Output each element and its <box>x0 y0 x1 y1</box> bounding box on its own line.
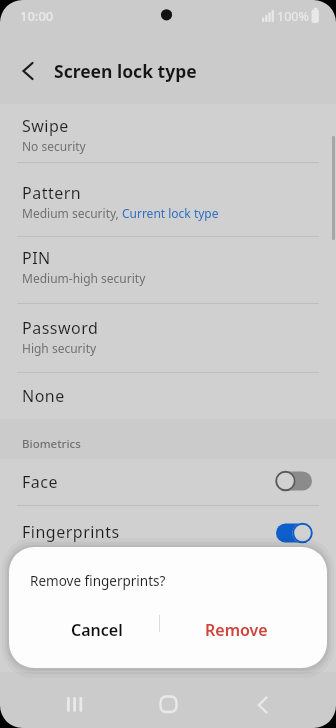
button[interactable] <box>242 684 282 724</box>
staticText: Face <box>22 471 58 493</box>
button[interactable] <box>0 459 336 506</box>
button[interactable] <box>148 684 188 724</box>
staticText: Screen lock type <box>54 59 197 83</box>
button[interactable] <box>0 104 336 162</box>
staticText: Biometrics <box>22 436 81 452</box>
staticText: Cancel <box>71 619 123 641</box>
staticText: 10:00 <box>20 7 54 25</box>
staticText: PIN <box>22 247 51 269</box>
button[interactable]: Cancel <box>47 605 147 655</box>
button[interactable] <box>0 237 336 303</box>
staticText: 100% <box>277 8 309 25</box>
button[interactable]: Remove <box>186 605 286 655</box>
staticText: Remove fingerprints? <box>30 572 166 590</box>
staticText: None <box>22 385 65 407</box>
staticText: Password <box>22 317 99 339</box>
button[interactable] <box>0 304 336 372</box>
staticText: Pattern <box>22 182 82 204</box>
button[interactable] <box>55 684 95 724</box>
staticText: No security <box>22 138 86 154</box>
staticText: Medium-high security <box>22 270 146 286</box>
button[interactable] <box>0 506 336 547</box>
staticText: High security <box>22 340 97 356</box>
button[interactable] <box>12 56 44 88</box>
button[interactable] <box>0 373 336 419</box>
staticText: Swipe <box>22 115 69 137</box>
staticText: Fingerprints <box>22 521 120 543</box>
button[interactable] <box>0 163 336 236</box>
staticText: Medium security, Current lock type <box>22 205 219 221</box>
staticText: Remove <box>205 619 268 641</box>
